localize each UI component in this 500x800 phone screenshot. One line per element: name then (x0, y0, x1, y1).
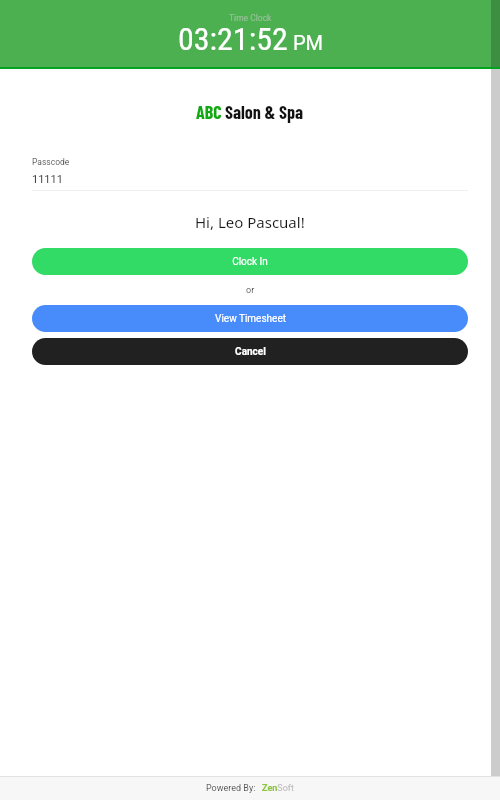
staticText: Cancel (235, 346, 266, 358)
staticText: or (246, 285, 255, 296)
staticText: PM (293, 31, 324, 54)
staticText: Powered By: ZenSoft (206, 783, 294, 794)
staticText: ABC Salon & Spa (196, 101, 304, 123)
button[interactable]: Clock In (32, 248, 468, 275)
staticText: Hi, Leo Pascual! (195, 212, 305, 232)
staticText: 11111 (32, 173, 63, 186)
staticText: Passcode (32, 157, 70, 167)
staticText: View Timesheet (215, 313, 286, 325)
staticText: Time Clock (229, 13, 272, 23)
button[interactable]: View Timesheet (32, 305, 468, 332)
staticText: Clock In (232, 256, 268, 268)
button[interactable]: Passcode field (32, 150, 468, 191)
staticText: 03:21:52 (178, 20, 288, 58)
button[interactable]: Cancel (32, 338, 468, 365)
